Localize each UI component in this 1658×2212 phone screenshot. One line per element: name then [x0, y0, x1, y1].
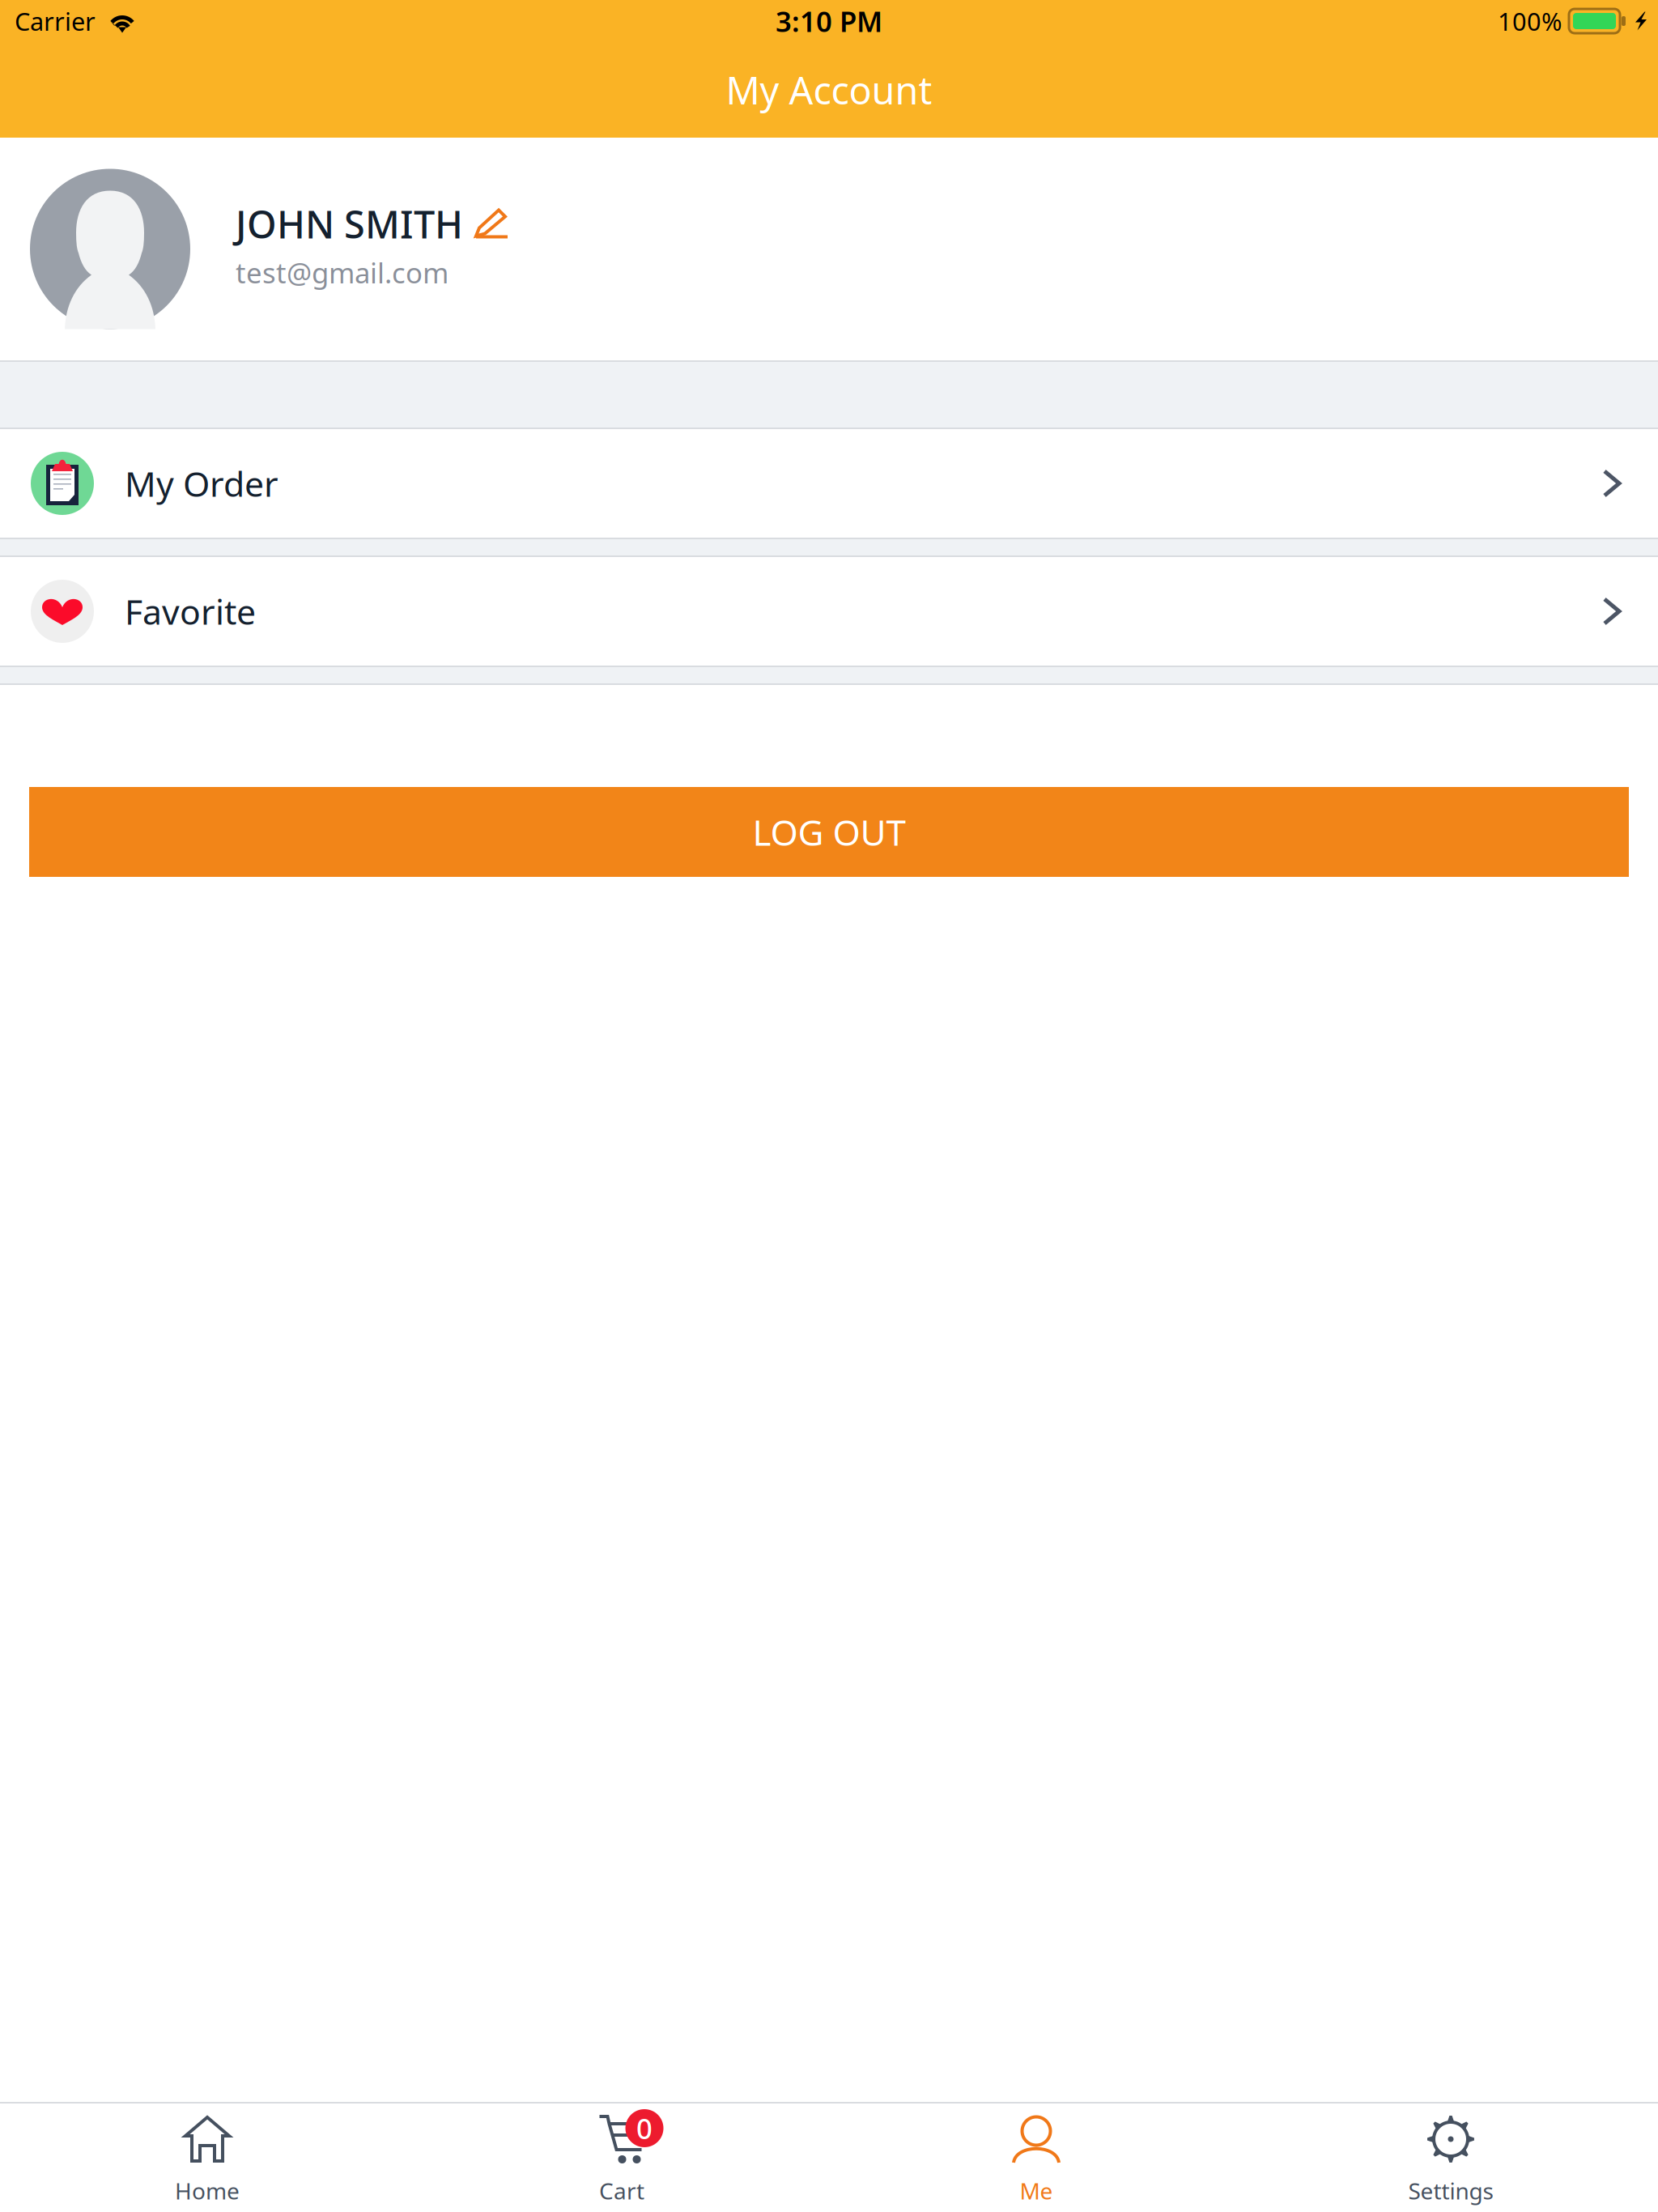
- staticText: My Account: [726, 65, 932, 115]
- button[interactable]: Settings: [1243, 2104, 1658, 2212]
- staticText: Home: [175, 2176, 240, 2206]
- staticText: Favorite: [125, 588, 256, 634]
- staticText: LOG OUT: [752, 808, 906, 856]
- staticText: Cart: [599, 2176, 644, 2206]
- staticText: test@gmail.com: [236, 254, 449, 291]
- button[interactable]: Home: [0, 2104, 414, 2212]
- staticText: Me: [1020, 2176, 1053, 2206]
- staticText: JOHN SMITH: [236, 199, 463, 249]
- staticText: 3:10 PM: [776, 2, 882, 40]
- button[interactable]: Me: [829, 2104, 1243, 2212]
- staticText: 100%: [1498, 5, 1562, 37]
- button[interactable]: My Order: [0, 429, 1658, 538]
- button[interactable]: Favorite: [0, 557, 1658, 666]
- button[interactable]: Edit name: [474, 209, 508, 238]
- staticText: Carrier: [15, 5, 96, 37]
- staticText: 0: [636, 2110, 653, 2147]
- button[interactable]: LOG OUT: [29, 787, 1629, 877]
- button[interactable]: 0: [414, 2104, 829, 2212]
- staticText: Settings: [1408, 2176, 1493, 2206]
- staticText: My Order: [125, 460, 278, 506]
